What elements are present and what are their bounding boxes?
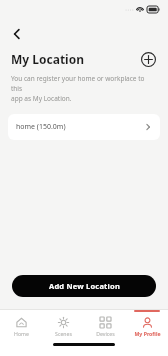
button[interactable]: Scenes bbox=[42, 310, 84, 340]
button[interactable]: Add location bbox=[137, 48, 159, 70]
staticText: Home bbox=[14, 330, 29, 337]
staticText: Scenes bbox=[55, 330, 72, 337]
button[interactable]: Add New Location bbox=[12, 275, 156, 297]
button[interactable]: Home bbox=[0, 310, 42, 340]
staticText: Devices bbox=[96, 330, 115, 337]
button[interactable]: Devices bbox=[84, 310, 126, 340]
staticText: My Location bbox=[11, 51, 137, 67]
staticText: Add New Location bbox=[49, 281, 120, 291]
button[interactable]: home (150.0m) bbox=[8, 114, 160, 140]
staticText: You can register your home or workplace … bbox=[11, 74, 157, 103]
button[interactable]: Back bbox=[5, 22, 29, 46]
staticText: home (150.0m) bbox=[16, 122, 144, 132]
button[interactable]: My Profile bbox=[126, 310, 168, 340]
staticText: My Profile bbox=[134, 330, 161, 337]
